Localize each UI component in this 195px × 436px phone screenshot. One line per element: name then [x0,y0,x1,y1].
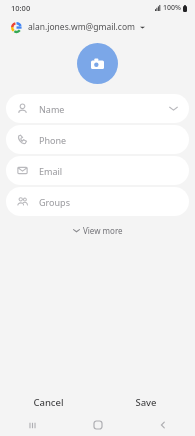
staticText: Email [39,165,63,177]
button[interactable]: Home [65,414,130,436]
staticText: 100% [163,3,181,13]
button[interactable]: Email [6,156,189,185]
staticText: 10:00 [11,3,31,13]
staticText: Groups [39,196,70,208]
button[interactable]: Name [6,94,189,123]
button[interactable]: Back [130,414,195,436]
button[interactable]: Groups [6,187,189,216]
button[interactable]: Change profile picture [77,43,118,84]
staticText: Save [135,396,157,409]
staticText: Phone [39,134,67,146]
button[interactable]: Recent apps [0,414,65,436]
button[interactable]: Save [97,390,195,414]
staticText: Name [39,103,65,115]
button[interactable]: View more [65,222,131,239]
staticText: Cancel [33,396,64,409]
button[interactable]: alan.jones.wm@gmail.com [0,16,195,38]
button[interactable]: Phone [6,125,189,154]
staticText: View more [83,225,123,236]
staticText: alan.jones.wm@gmail.com [28,21,136,33]
button[interactable]: Cancel [0,390,97,414]
